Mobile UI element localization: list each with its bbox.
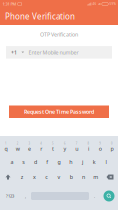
button[interactable]: 8 (83, 139, 94, 155)
staticText: u (75, 145, 78, 152)
staticText: j (82, 158, 83, 166)
staticText: 59% (109, 2, 115, 6)
button[interactable]: c (41, 169, 53, 185)
staticText: 8 (87, 142, 89, 145)
staticText: d (34, 158, 37, 166)
staticText: r (40, 145, 42, 152)
staticText: p (111, 145, 114, 152)
staticText: n (82, 173, 85, 181)
staticText: 1 (5, 142, 7, 145)
button[interactable]: k (88, 155, 100, 169)
staticText: ?123 (6, 193, 14, 199)
button[interactable]: Delete (102, 169, 118, 185)
button[interactable]: 4 (35, 139, 47, 155)
staticText: LTE (98, 2, 101, 6)
button[interactable]: 7 (71, 139, 83, 155)
button[interactable]: m (90, 169, 102, 185)
staticText: v (57, 173, 60, 181)
staticText: OTP Verification (40, 31, 78, 38)
button[interactable]: d (30, 155, 41, 169)
button[interactable]: 3 (24, 139, 35, 155)
staticText: l (106, 158, 107, 166)
button[interactable]: 9 (94, 139, 106, 155)
staticText: 6 (64, 142, 66, 145)
button[interactable]: Request One Time Password (9, 105, 109, 118)
staticText: y (63, 145, 66, 152)
button[interactable]: 5 (47, 139, 59, 155)
button[interactable]: b (65, 169, 77, 185)
staticText: f (46, 158, 48, 166)
button[interactable]: h (65, 155, 77, 169)
staticText: h (69, 158, 72, 166)
staticText: 1:31 PM (2, 1, 16, 7)
button[interactable]: 1 (0, 139, 12, 155)
staticText: g (57, 158, 60, 166)
staticText: 3 (28, 142, 30, 145)
button[interactable]: Search (100, 188, 118, 204)
staticText: 2 (17, 142, 19, 145)
button[interactable]: Shift (0, 169, 16, 185)
staticText: Enter Mobile number (29, 49, 79, 56)
staticText: 0 (111, 142, 113, 145)
button[interactable]: z (16, 169, 28, 185)
button[interactable]: 0 (106, 139, 118, 155)
staticText: s (22, 158, 25, 166)
staticText: q (4, 145, 7, 152)
staticText: b (70, 173, 73, 181)
staticText: . (94, 193, 95, 199)
staticText: +1 (11, 49, 17, 56)
button[interactable]: a (6, 155, 18, 169)
staticText: Phone Verification (5, 11, 75, 22)
button[interactable]: x (28, 169, 41, 185)
button[interactable]: n (77, 169, 90, 185)
staticText: e (28, 145, 31, 152)
button[interactable]: 2 (12, 139, 24, 155)
staticText: t (52, 145, 54, 152)
staticText: a (10, 158, 13, 166)
staticText: m (93, 173, 98, 181)
staticText: Request One Time Password (24, 108, 94, 115)
button[interactable]: Space (31, 188, 89, 204)
button[interactable]: ?123 (0, 188, 20, 204)
button[interactable]: g (53, 155, 65, 169)
staticText: 46 (92, 2, 96, 6)
staticText: w (16, 145, 20, 152)
staticText: o (99, 145, 102, 152)
staticText: 7 (76, 142, 78, 145)
button[interactable]: 6 (59, 139, 71, 155)
staticText: 5 (52, 142, 54, 145)
button[interactable]: l (100, 155, 112, 169)
staticText: z (21, 173, 24, 181)
button[interactable]: f (41, 155, 53, 169)
staticText: i (88, 145, 89, 152)
staticText: k (93, 158, 96, 166)
staticText: 4 (40, 142, 42, 145)
staticText: c (45, 173, 48, 181)
staticText: , (25, 193, 26, 199)
button[interactable]: s (18, 155, 30, 169)
button[interactable]: v (53, 169, 65, 185)
staticText: x (33, 173, 36, 181)
staticText: 9 (99, 142, 101, 145)
button[interactable]: j (77, 155, 88, 169)
